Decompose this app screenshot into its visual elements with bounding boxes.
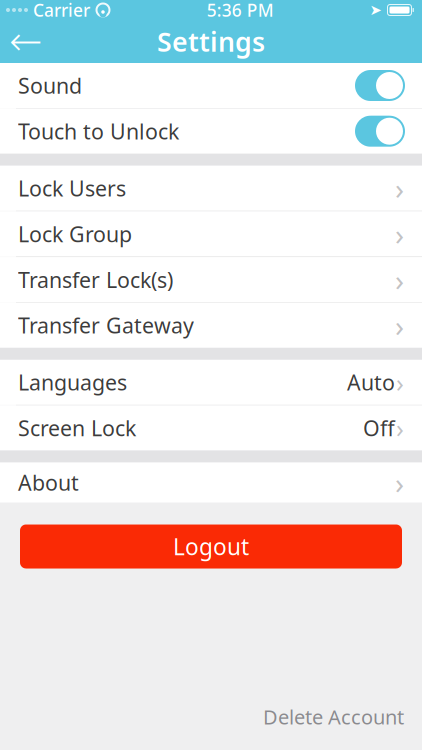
staticText: Screen Lock	[18, 414, 136, 442]
staticText: 5:36 PM	[207, 0, 274, 21]
staticText: ›	[395, 260, 404, 299]
button[interactable]: Transfer Gateway	[0, 303, 422, 348]
button[interactable]: Lock Users	[0, 166, 422, 211]
staticText: Languages	[18, 368, 127, 396]
staticText: Settings	[157, 24, 265, 59]
button[interactable]: Languages	[0, 360, 422, 405]
staticText: Auto	[347, 368, 395, 396]
staticText: ›	[395, 463, 404, 502]
staticText: ›	[395, 306, 404, 345]
button[interactable]: Logout	[20, 524, 402, 568]
staticText: Transfer Gateway	[18, 311, 194, 339]
button[interactable]: Sound	[0, 63, 422, 108]
button[interactable]: Transfer Lock(s)	[0, 257, 422, 302]
staticText: Touch to Unlock	[18, 117, 179, 145]
staticText: Logout	[173, 531, 249, 561]
staticText: ›	[395, 214, 404, 253]
staticText: ←	[9, 19, 43, 64]
button[interactable]: Lock Group	[0, 211, 422, 256]
staticText: Off	[363, 414, 395, 442]
staticText: ➤	[369, 2, 381, 18]
staticText: ›	[395, 169, 404, 208]
staticText: Transfer Lock(s)	[18, 265, 173, 294]
staticText: ›	[396, 411, 404, 445]
staticText: ›	[396, 365, 404, 399]
staticText: Lock Group	[18, 220, 132, 248]
staticText: Lock Users	[18, 174, 126, 202]
button[interactable]: Screen Lock	[0, 405, 422, 450]
button[interactable]: Delete Account	[255, 697, 412, 736]
button[interactable]: Back	[0, 20, 52, 63]
staticText: Carrier	[33, 0, 90, 21]
staticText: Sound	[18, 71, 82, 100]
staticText: About	[18, 468, 79, 497]
button[interactable]: About	[0, 462, 422, 502]
staticText: Delete Account	[263, 703, 404, 730]
button[interactable]: Touch to Unlock	[0, 109, 422, 154]
